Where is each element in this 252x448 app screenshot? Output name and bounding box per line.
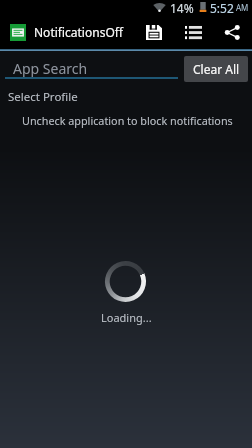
staticText: 5:52 [210,0,234,14]
button[interactable]: Save [136,14,172,50]
button[interactable]: Select Profile [8,89,78,105]
staticText: App Search [13,59,88,78]
staticText: Clear All [193,61,240,77]
staticText: NotificationsOff [34,24,124,40]
button[interactable]: Share [214,14,250,50]
staticText: AM [236,2,249,13]
button[interactable]: List [175,14,211,50]
staticText: Uncheck application to block notificatio… [22,113,233,128]
staticText: 14% [170,0,194,14]
button[interactable]: Clear All [184,56,248,82]
staticText: Loading... [101,310,152,325]
